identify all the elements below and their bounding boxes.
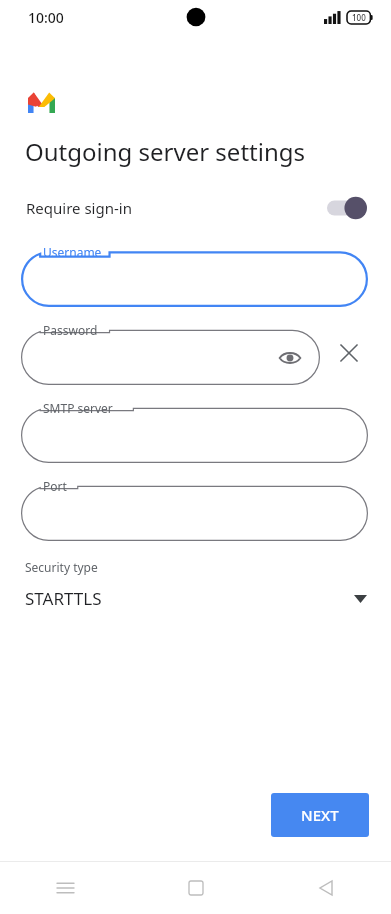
staticText: Security type [25,559,98,575]
button[interactable]: Home [131,862,261,914]
staticText: 10:00 [28,8,64,27]
button[interactable]: NEXT [271,793,369,837]
staticText: 100 [352,12,366,23]
button[interactable]: Password [21,321,320,385]
button[interactable]: Username [21,243,368,307]
button[interactable]: Require sign-in [0,190,391,226]
other: Expand security type [354,595,367,603]
button[interactable]: Show password [276,344,304,372]
button[interactable]: Recent apps [0,862,131,914]
staticText: Username [43,244,102,260]
staticText: SMTP server [43,400,113,416]
button[interactable]: Port [21,477,368,541]
button[interactable]: Back [261,862,391,914]
button[interactable]: SMTP server [21,399,368,463]
staticText: STARTTLS [25,587,102,610]
button[interactable]: Security type [0,559,391,610]
staticText: NEXT [301,805,339,825]
staticText: Outgoing server settings [25,135,306,168]
staticText: Port [43,478,67,494]
staticText: Require sign-in [26,198,132,218]
button[interactable]: Clear password [332,336,366,370]
staticText: Password [43,322,98,338]
